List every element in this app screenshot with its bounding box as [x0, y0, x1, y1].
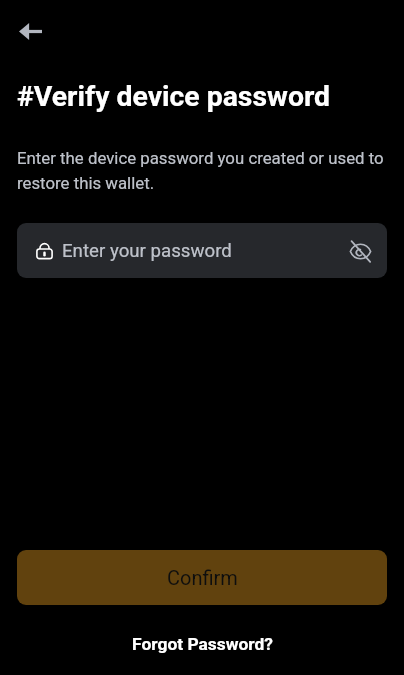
- staticText: #Verify device password: [17, 80, 331, 113]
- button[interactable]: Forgot Password?: [122, 630, 283, 658]
- staticText: Enter your password: [62, 240, 232, 262]
- button[interactable]: Enter your password: [17, 223, 387, 278]
- staticText: Confirm: [167, 566, 238, 589]
- button[interactable]: Confirm: [17, 550, 387, 605]
- staticText: Enter the device password you created or…: [17, 148, 384, 193]
- button[interactable]: Show password: [346, 237, 374, 265]
- button[interactable]: Back: [14, 15, 46, 47]
- staticText: Forgot Password?: [132, 634, 273, 654]
